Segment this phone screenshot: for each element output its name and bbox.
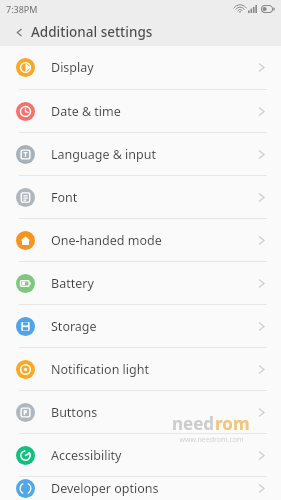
button[interactable]: Battery <box>0 261 281 304</box>
staticText: Language & input <box>51 146 156 163</box>
staticText: Battery <box>51 275 94 292</box>
staticText: Accessibility <box>51 447 122 464</box>
button[interactable]: Font <box>0 175 281 218</box>
button[interactable]: Date & time <box>0 89 281 132</box>
staticText: rom <box>215 412 250 435</box>
button[interactable]: Language & input <box>0 132 281 175</box>
button[interactable]: Notification light <box>0 347 281 390</box>
staticText: www.needrom.com <box>179 435 244 445</box>
button[interactable]: Storage <box>0 304 281 347</box>
staticText: Date & time <box>51 103 121 120</box>
staticText: One-handed mode <box>51 232 162 249</box>
staticText: Additional settings <box>31 23 153 41</box>
staticText: Notification light <box>51 361 149 378</box>
staticText: Buttons <box>51 404 98 421</box>
staticText: need <box>172 412 215 435</box>
staticText: Developer options <box>51 480 159 497</box>
button[interactable]: Developer options <box>0 476 281 500</box>
button[interactable]: Buttons <box>0 390 281 433</box>
button[interactable]: One-handed mode <box>0 218 281 261</box>
button[interactable]: Back <box>9 22 29 42</box>
staticText: Display <box>51 59 94 76</box>
staticText: Storage <box>51 318 97 335</box>
button[interactable]: Accessibility <box>0 433 281 476</box>
staticText: Font <box>51 189 78 206</box>
staticText: 7:38PM <box>6 3 38 15</box>
button[interactable]: Display <box>0 46 281 89</box>
